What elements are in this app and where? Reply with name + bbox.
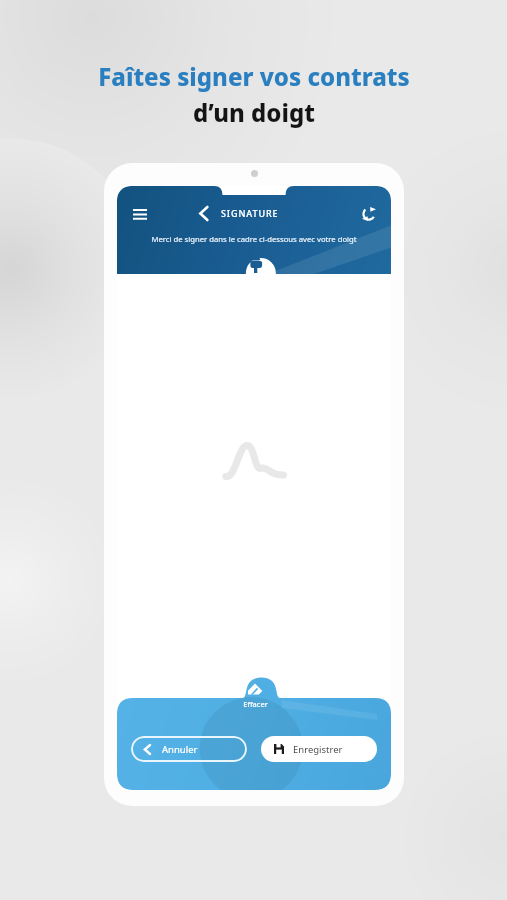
- button[interactable]: Enregistrer: [261, 736, 377, 762]
- button[interactable]: Back: [191, 200, 217, 226]
- staticText: Enregistrer: [293, 743, 343, 756]
- button[interactable]: Annuler: [131, 736, 247, 762]
- button[interactable]: Effacer: [227, 677, 283, 709]
- staticText: SIGNATURE: [221, 207, 279, 219]
- button[interactable]: Menu: [125, 200, 155, 230]
- button[interactable]: Refresh: [355, 200, 383, 228]
- staticText: Annuler: [162, 743, 198, 756]
- staticText: Faîtes signer vos contrats: [98, 60, 410, 93]
- staticText: Effacer: [243, 699, 268, 709]
- staticText: Merci de signer dans le cadre ci-dessous…: [151, 234, 357, 244]
- staticText: d’un doigt: [193, 96, 315, 129]
